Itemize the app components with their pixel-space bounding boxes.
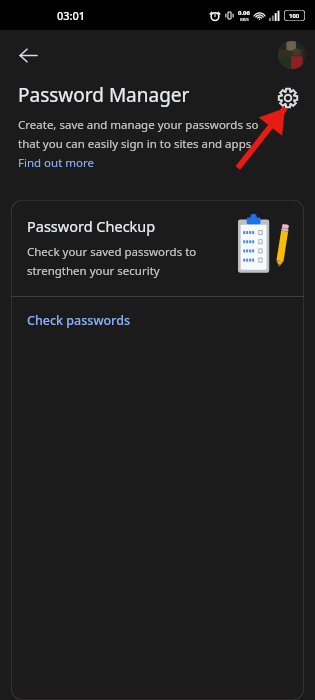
staticText: that you can easily sign in to sites and… xyxy=(18,136,255,152)
staticText: Check your saved passwords to xyxy=(27,244,197,260)
button[interactable]: Settings xyxy=(272,82,304,114)
staticText: strengthen your security xyxy=(27,263,160,279)
staticText: 0.06 xyxy=(238,9,250,17)
staticText: 100 xyxy=(289,12,300,20)
staticText: Password Checkup xyxy=(27,216,156,236)
staticText: Find out more xyxy=(18,155,95,171)
button[interactable]: Back xyxy=(10,37,46,73)
staticText: Create, save and manage your passwords s… xyxy=(18,117,259,133)
staticText: 03:01 xyxy=(57,8,86,23)
staticText: Password Manager xyxy=(18,82,190,108)
button[interactable]: Check passwords xyxy=(11,297,304,343)
button[interactable]: Find out more xyxy=(18,155,95,171)
button[interactable]: Account profile xyxy=(278,41,306,69)
button[interactable]: Password Checkup xyxy=(11,200,304,296)
staticText: Check passwords xyxy=(27,312,130,329)
staticText: KB/S xyxy=(240,17,249,22)
